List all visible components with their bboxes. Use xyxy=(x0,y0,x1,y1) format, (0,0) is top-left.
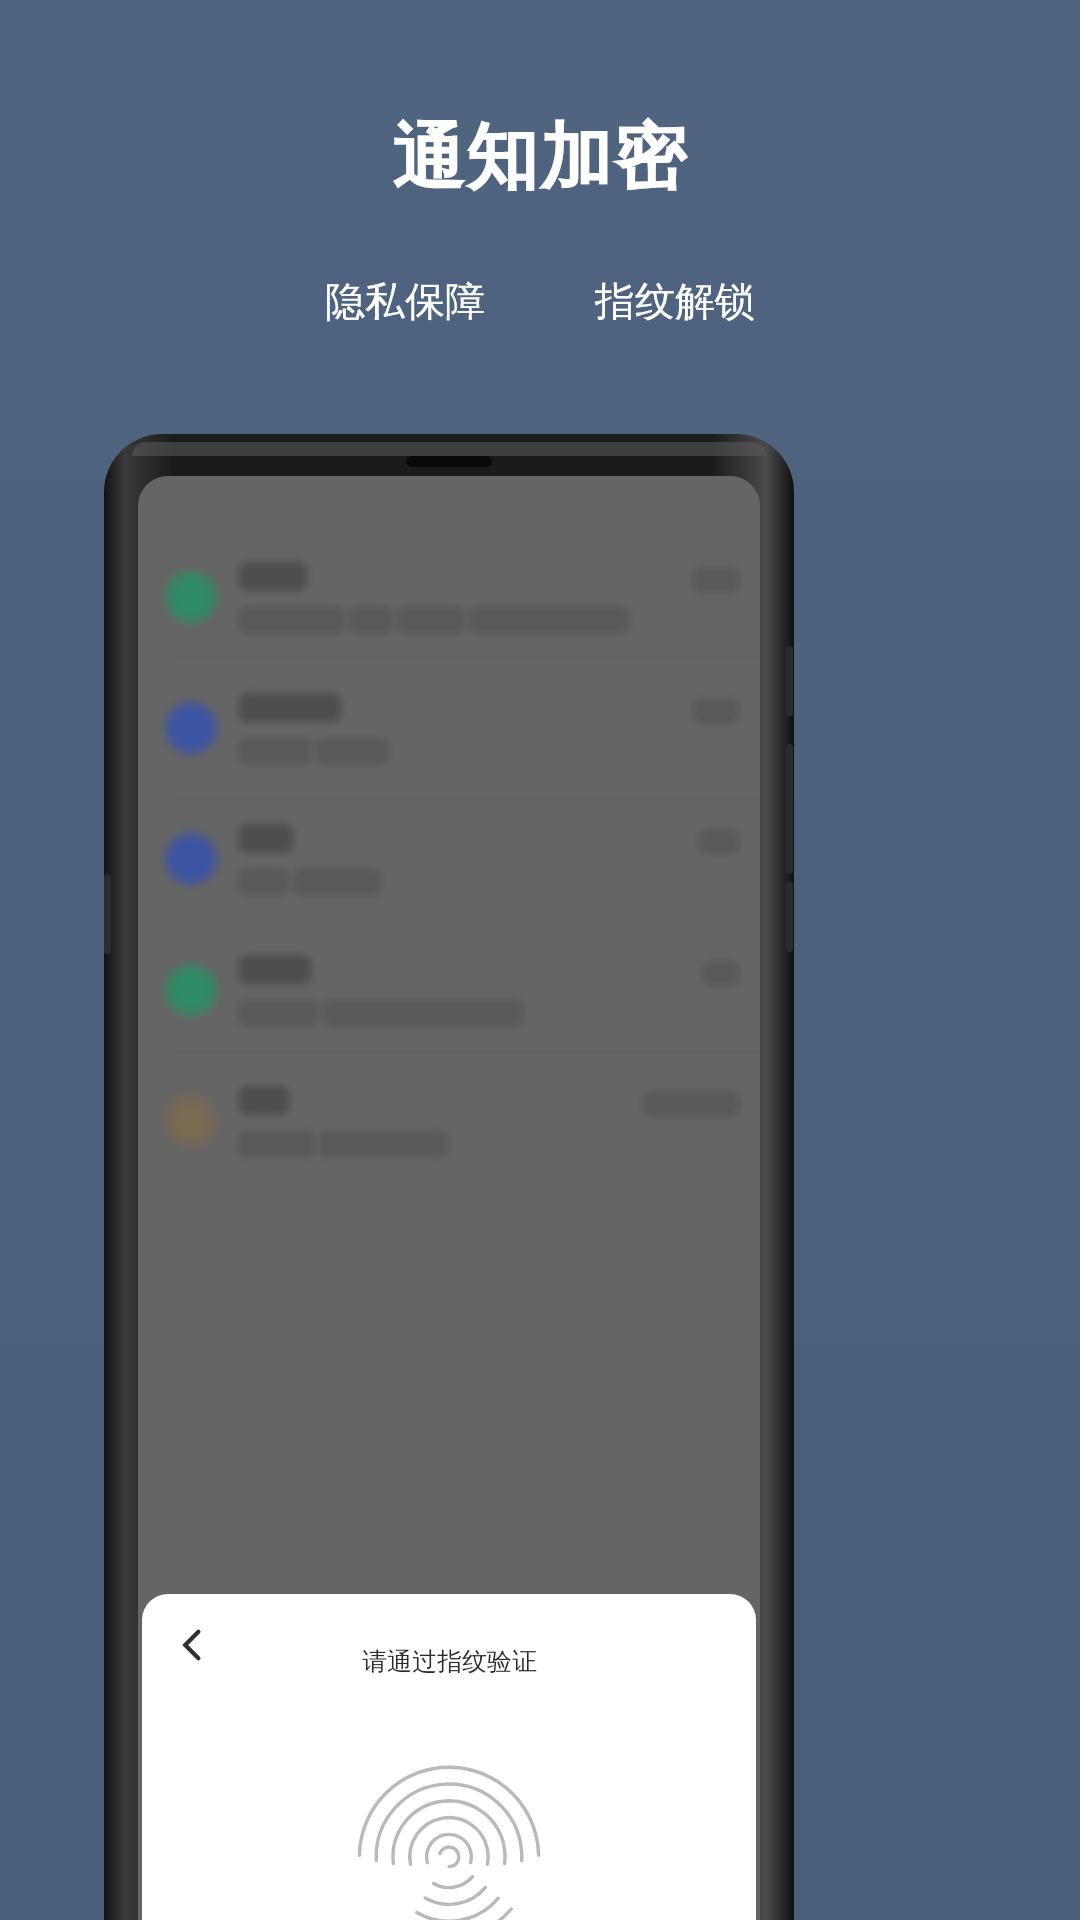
button[interactable]: 指纹验证 xyxy=(379,1784,519,1920)
staticText: 指纹解锁 xyxy=(595,276,755,326)
button[interactable] xyxy=(138,663,760,793)
button[interactable] xyxy=(138,532,760,662)
staticText: 请通过指纹验证 xyxy=(362,1646,537,1677)
button[interactable] xyxy=(138,794,760,924)
staticText: 隐私保障 xyxy=(325,276,485,326)
staticText: 通知加密 xyxy=(0,113,1080,204)
button[interactable]: 返回 xyxy=(164,1616,222,1674)
button[interactable] xyxy=(138,1056,760,1186)
button[interactable] xyxy=(138,925,760,1055)
